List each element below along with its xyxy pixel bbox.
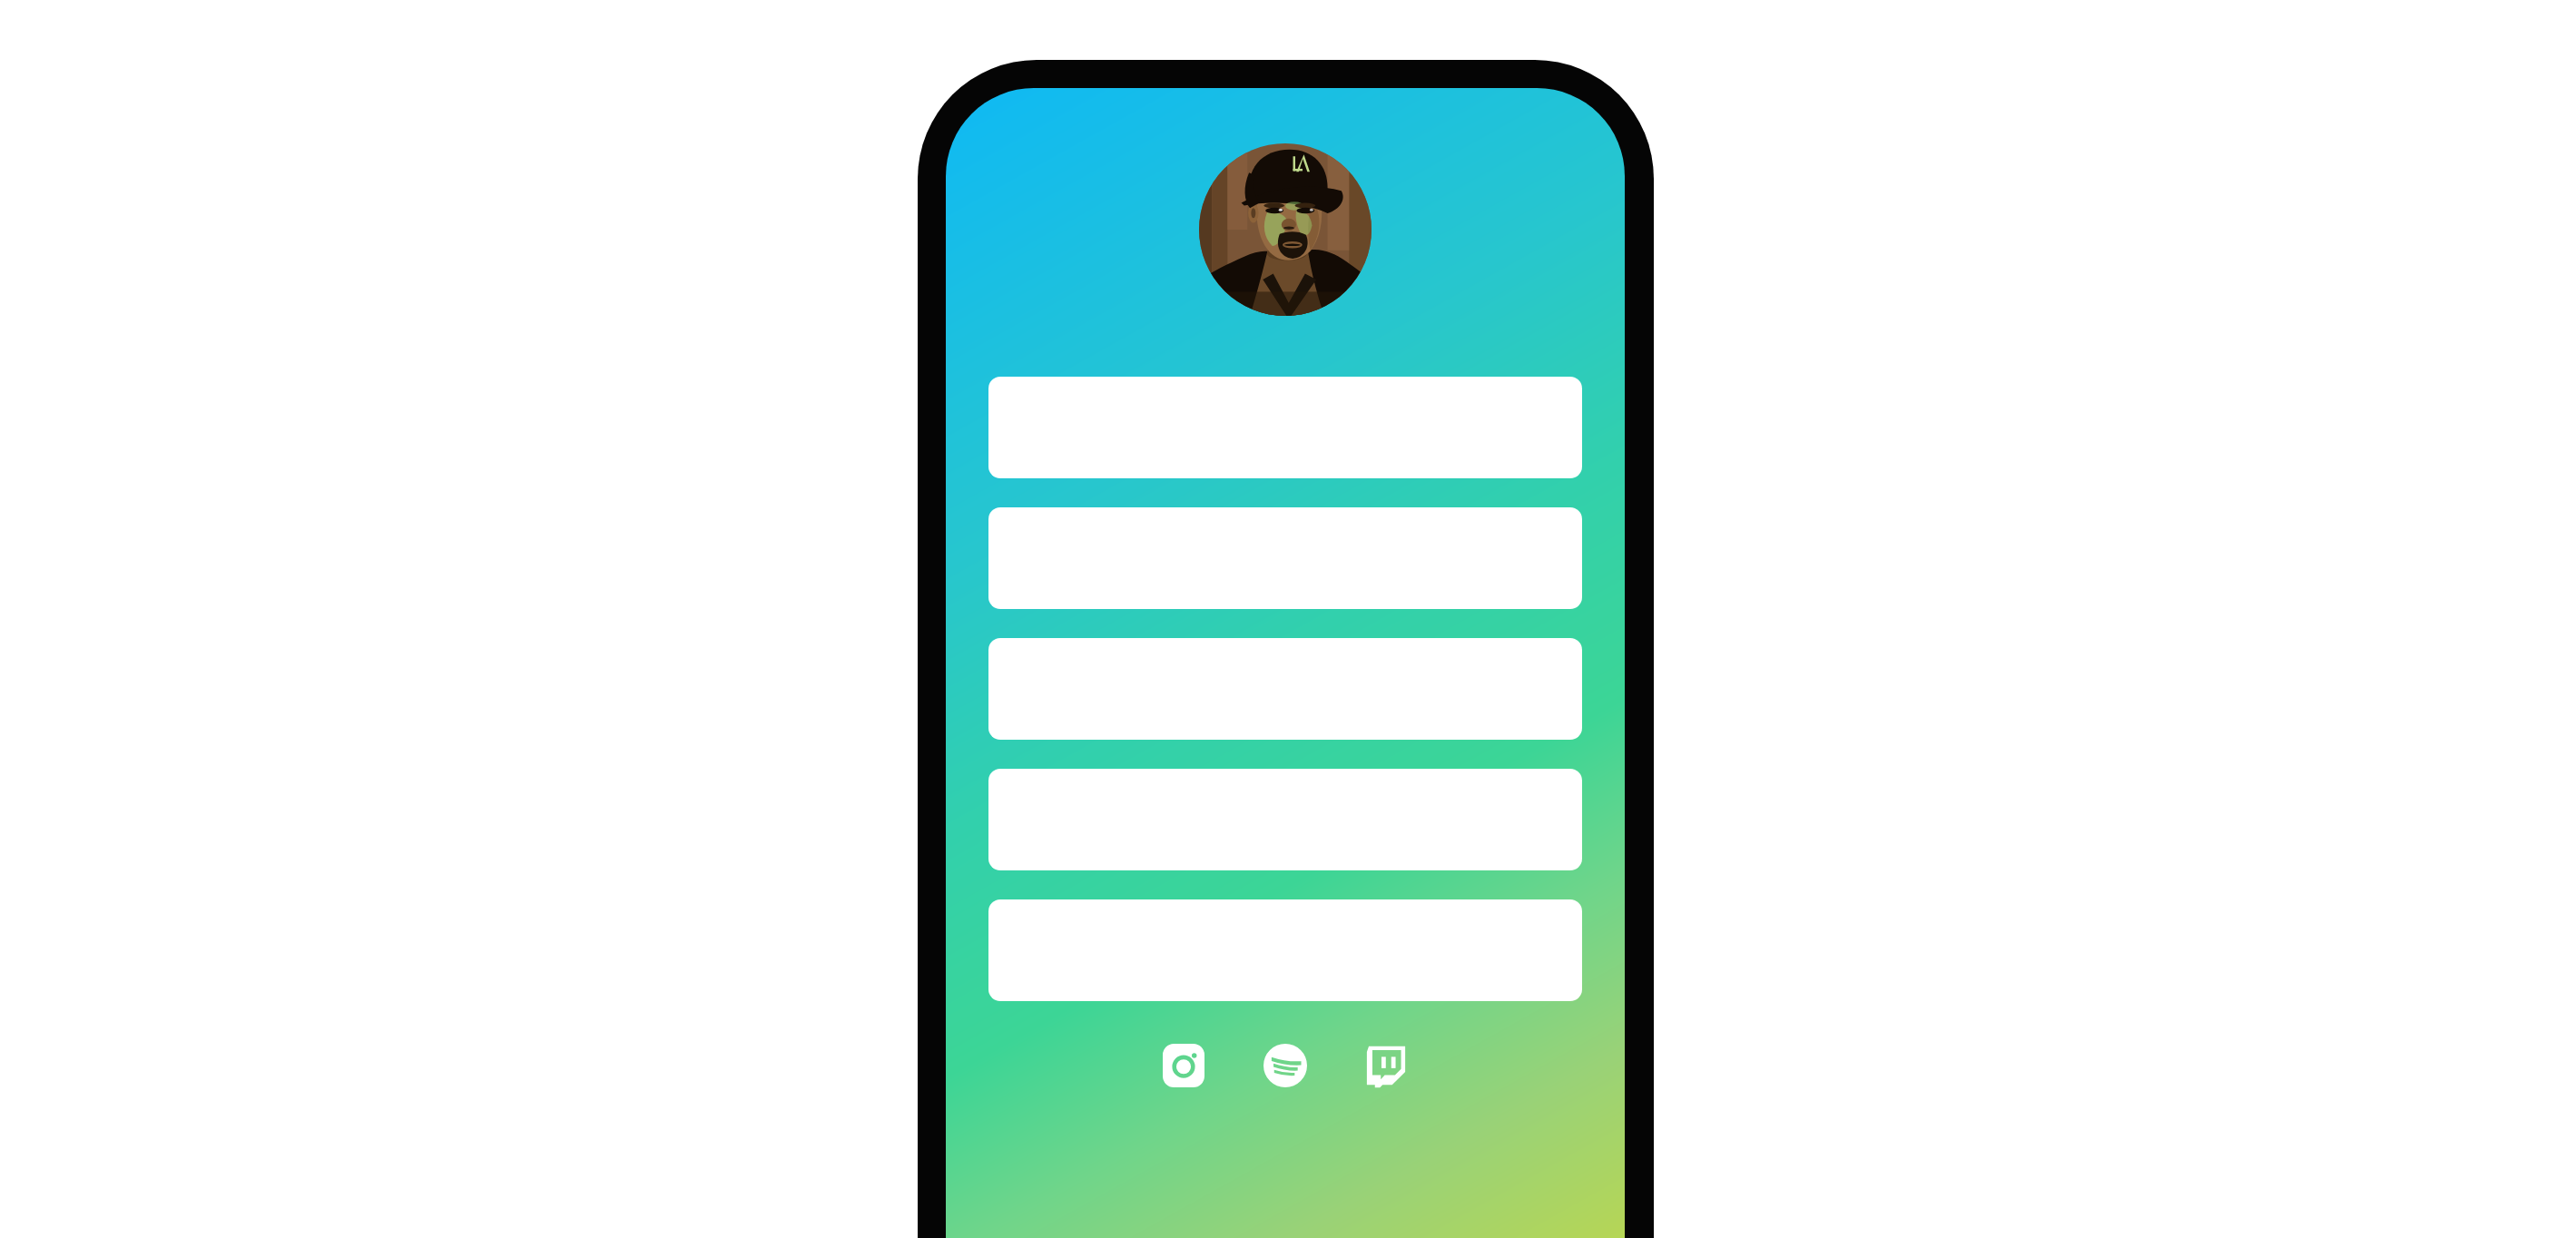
button[interactable]: Twitch — [1364, 1044, 1408, 1087]
button[interactable] — [988, 638, 1582, 740]
button[interactable]: Spotify — [1263, 1044, 1307, 1087]
button[interactable] — [988, 899, 1582, 1001]
button[interactable] — [988, 507, 1582, 609]
button[interactable] — [988, 769, 1582, 870]
button[interactable]: Instagram — [1163, 1044, 1206, 1087]
button[interactable]: Profile photo — [1199, 143, 1372, 316]
button[interactable] — [988, 377, 1582, 478]
